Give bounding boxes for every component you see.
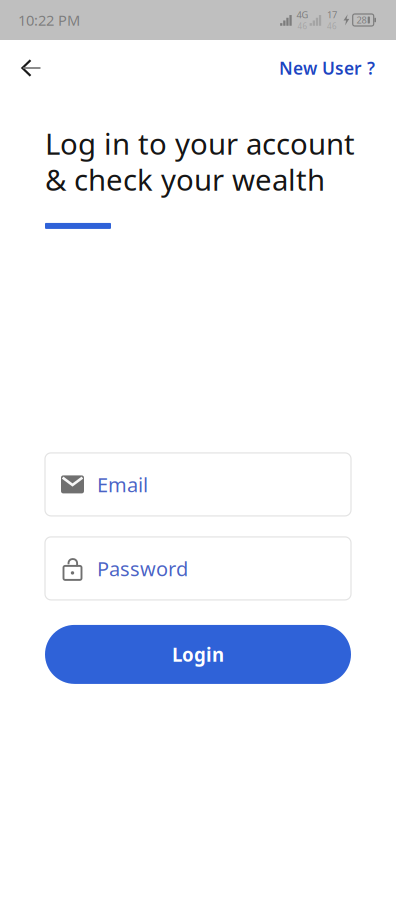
staticText: 10:22 PM bbox=[18, 10, 80, 30]
staticText: Email bbox=[97, 471, 148, 498]
button[interactable]: Password bbox=[45, 537, 351, 600]
button[interactable]: Back bbox=[9, 46, 53, 90]
staticText: 46 bbox=[327, 21, 337, 31]
button[interactable]: Login bbox=[45, 625, 351, 684]
staticText: 46 bbox=[298, 21, 308, 31]
staticText: 28 bbox=[356, 14, 366, 26]
staticText: Login bbox=[172, 642, 224, 667]
staticText: & check your wealth bbox=[45, 160, 325, 199]
staticText: 4G bbox=[297, 8, 309, 21]
button[interactable]: New User ? bbox=[269, 46, 385, 90]
staticText: 17 bbox=[327, 8, 337, 21]
staticText: New User ? bbox=[279, 56, 375, 79]
staticText: Log in to your account bbox=[45, 124, 355, 163]
staticText: Password bbox=[97, 555, 188, 582]
button[interactable]: Email bbox=[45, 453, 351, 516]
